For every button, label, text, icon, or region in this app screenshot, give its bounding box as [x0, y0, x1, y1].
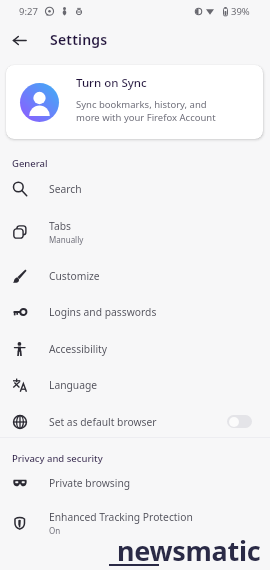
staticText: Set as default browser	[49, 415, 157, 429]
button[interactable]: Logins and passwords	[0, 293, 270, 330]
button[interactable]: Customize	[0, 257, 270, 294]
staticText: Enhanced Tracking Protection	[49, 510, 193, 524]
staticText: Search	[49, 182, 82, 196]
staticText: On	[49, 525, 61, 536]
staticText: newsmatic	[117, 532, 261, 569]
button[interactable]: Tabs	[0, 207, 270, 257]
staticText: 39%	[231, 5, 250, 18]
staticText: Sync bookmarks, history, and more with y…	[76, 98, 216, 123]
button[interactable]: Back	[6, 27, 32, 53]
button[interactable]: Enhanced Tracking Protection	[0, 500, 270, 546]
staticText: Manually	[49, 234, 84, 245]
staticText: General	[12, 157, 48, 170]
staticText: Tabs	[49, 219, 71, 233]
staticText: Turn on Sync	[76, 75, 147, 91]
button[interactable]: Private browsing	[0, 464, 270, 501]
button[interactable]: Turn on Sync	[6, 65, 263, 139]
staticText: Language	[49, 378, 98, 392]
button[interactable]: Accessibility	[0, 330, 270, 367]
button[interactable]: Search	[0, 170, 270, 207]
staticText: 9:27	[19, 5, 38, 18]
button[interactable]: Language	[0, 366, 270, 403]
staticText: Privacy and security	[12, 452, 103, 465]
staticText: Customize	[49, 269, 100, 283]
staticText: Private browsing	[49, 476, 131, 490]
button[interactable]: Set as default browser toggle	[227, 415, 252, 428]
staticText: Logins and passwords	[49, 305, 157, 319]
button[interactable]: Set as default browser	[0, 403, 270, 440]
staticText: Settings	[50, 30, 108, 49]
staticText: Accessibility	[49, 342, 108, 356]
